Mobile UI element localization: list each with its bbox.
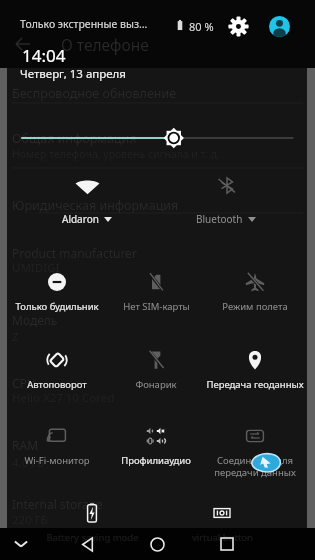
button[interactable]: Brightness bbox=[14, 128, 301, 148]
staticText: CPU bbox=[12, 375, 36, 391]
staticText: Нет SIM-карты bbox=[123, 300, 190, 313]
staticText: UMIDIGI bbox=[12, 260, 60, 276]
staticText: Режим полета bbox=[222, 300, 288, 313]
button[interactable]: Battery saving mode bbox=[43, 503, 141, 544]
staticText: Z bbox=[12, 329, 19, 345]
button[interactable]: Wi-Fi-монитор bbox=[8, 426, 106, 467]
staticText: Helio X27 10 Cored bbox=[12, 390, 115, 406]
staticText: Internal storage bbox=[12, 496, 103, 512]
staticText: virtual button bbox=[192, 531, 253, 544]
button[interactable]: Фонарик bbox=[107, 350, 205, 391]
staticText: Четверг, 13 апреля bbox=[20, 66, 126, 82]
staticText: Product manufacturer bbox=[12, 245, 137, 261]
button[interactable]: Recent apps bbox=[203, 528, 251, 560]
button[interactable]: Bluetooth bbox=[166, 176, 286, 226]
button[interactable]: User account bbox=[269, 16, 290, 37]
button[interactable]: Передача геоданных bbox=[206, 350, 304, 391]
staticText: Профилиаудио bbox=[121, 454, 191, 467]
staticText: Только будильник bbox=[15, 300, 99, 313]
staticText: Юридическая информация bbox=[12, 197, 179, 214]
staticText: Wi-Fi-монитор bbox=[24, 454, 90, 467]
staticText: Беспроводное обновление bbox=[12, 85, 177, 102]
button[interactable]: Нет SIM-карты bbox=[107, 272, 205, 313]
staticText: 220 ГБ bbox=[12, 512, 48, 528]
staticText: Фонарик bbox=[135, 378, 177, 391]
staticText: RAM bbox=[12, 437, 39, 453]
button[interactable]: Профилиаудио bbox=[107, 426, 205, 467]
button[interactable]: Режим полета bbox=[206, 272, 304, 313]
button[interactable]: Settings bbox=[228, 16, 249, 37]
staticText: Общая информация bbox=[12, 130, 137, 147]
staticText: Battery saving mode bbox=[46, 531, 139, 544]
staticText: Номер телефона, уровень сигнала и т. д. bbox=[12, 147, 220, 161]
button[interactable]: Автоповорот bbox=[8, 350, 106, 391]
staticText: Передача геоданных bbox=[206, 378, 304, 391]
button[interactable]: Только будильник bbox=[8, 272, 106, 313]
button[interactable]: Home bbox=[133, 528, 181, 560]
staticText: 4,0 ГБ bbox=[12, 455, 45, 471]
staticText: Автоповорот bbox=[27, 378, 87, 391]
button[interactable]: virtual button bbox=[173, 503, 271, 544]
button[interactable]: Hide bbox=[0, 528, 42, 560]
staticText: Только экстренные выз… bbox=[20, 17, 148, 31]
staticText: О телефоне bbox=[61, 34, 149, 55]
staticText: Модель bbox=[12, 312, 58, 328]
button[interactable]: Aldaron bbox=[27, 176, 147, 226]
staticText: Aldaron bbox=[62, 212, 99, 226]
button[interactable]: Back bbox=[63, 528, 111, 560]
button[interactable]: Соединение для передачи данных bbox=[206, 426, 304, 478]
staticText: Bluetooth bbox=[196, 212, 243, 226]
staticText: 80 % bbox=[189, 19, 214, 34]
staticText: Соединение для передачи данных bbox=[214, 454, 296, 478]
staticText: 14:04 bbox=[22, 44, 66, 67]
